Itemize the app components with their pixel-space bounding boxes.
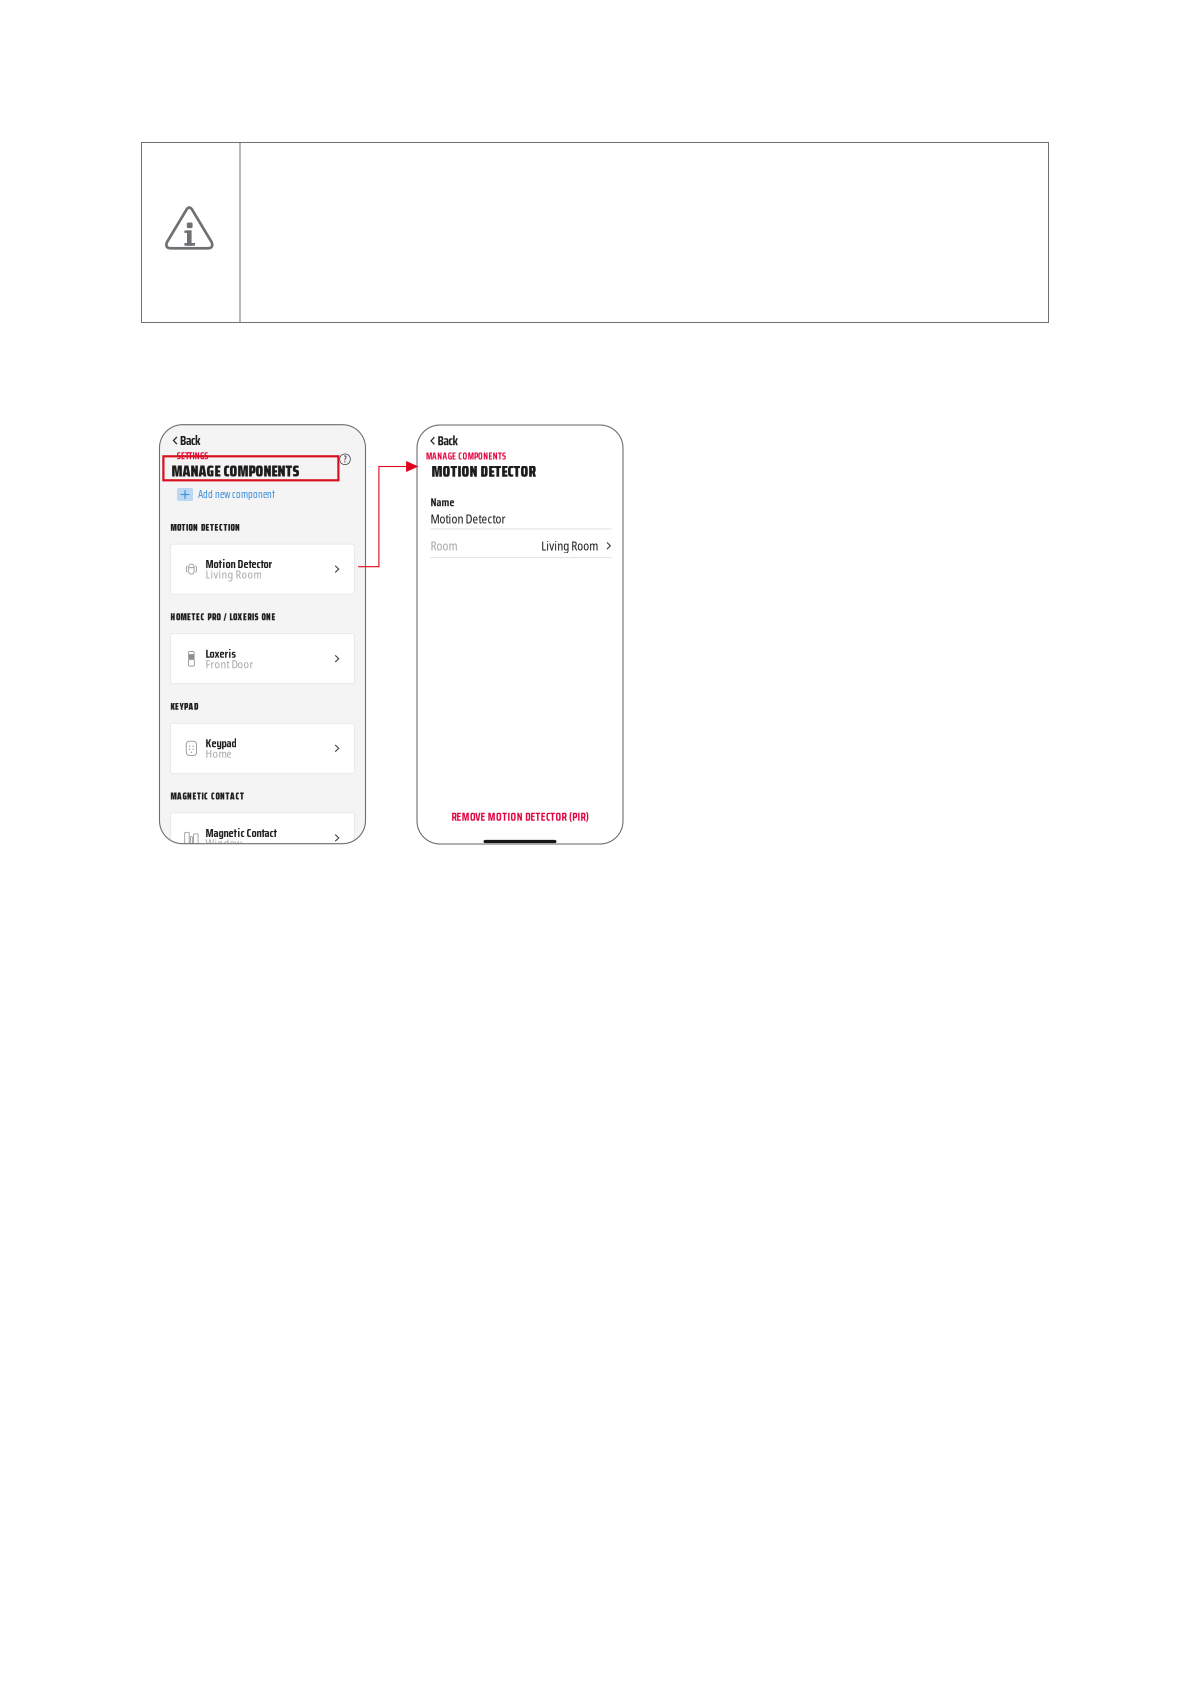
button[interactable]: Back xyxy=(430,434,500,447)
staticText: Back xyxy=(180,430,201,450)
staticText: REMOVE MOTION DETECTOR (PIR) xyxy=(451,808,589,826)
staticText: Loxeris xyxy=(205,644,235,663)
staticText: ? xyxy=(343,453,346,465)
button[interactable]: Keypad xyxy=(170,723,354,773)
staticText: Home xyxy=(205,746,231,761)
staticText: MANAGE COMPONENTS xyxy=(426,449,506,463)
staticText: SETTINGS xyxy=(177,449,208,463)
staticText: Motion Detector xyxy=(205,555,272,573)
button[interactable]: Magnetic Contact xyxy=(170,813,354,863)
button[interactable]: Motion Detector xyxy=(170,544,354,594)
button[interactable]: Loxeris xyxy=(170,634,354,684)
staticText: HOMETEC PRO / LOXERIS ONE xyxy=(170,610,275,624)
button[interactable]: Room xyxy=(430,540,611,552)
staticText: MANAGE COMPONENTS xyxy=(171,459,299,483)
button[interactable]: Help xyxy=(339,453,351,465)
staticText: Keypad xyxy=(205,734,236,752)
button[interactable]: Back xyxy=(172,434,242,447)
staticText: MOTION DETECTION xyxy=(170,521,240,535)
staticText: Motion Detector xyxy=(430,511,505,527)
staticText: Name xyxy=(430,493,454,511)
button[interactable]: REMOVE MOTION DETECTOR (PIR) xyxy=(417,810,623,824)
staticText: KEYPAD xyxy=(170,700,198,714)
staticText: Window xyxy=(205,835,241,851)
staticText: MOTION DETECTOR xyxy=(431,459,536,483)
staticText: Front Door xyxy=(205,656,253,671)
staticText: Living Room xyxy=(541,538,598,554)
staticText: Add new component xyxy=(198,486,275,503)
staticText: Back xyxy=(437,431,458,451)
staticText: Living Room xyxy=(205,567,261,582)
staticText: MAGNETIC CONTACT xyxy=(170,789,244,803)
button[interactable]: Add new component xyxy=(177,487,302,501)
staticText: Magnetic Contact xyxy=(205,824,277,842)
staticText: Room xyxy=(430,538,457,554)
